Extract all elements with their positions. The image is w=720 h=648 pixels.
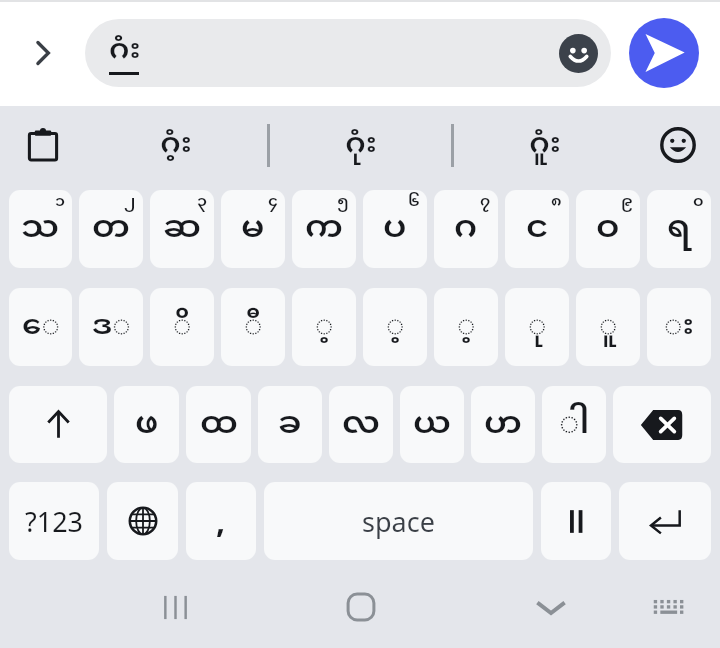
button[interactable]: Shift	[9, 386, 107, 463]
button[interactable]: ◌့	[363, 288, 427, 366]
staticText: ◌့	[386, 306, 405, 348]
button[interactable]: Clipboard	[0, 106, 85, 184]
button[interactable]: ဂံ့း	[85, 106, 267, 184]
button[interactable]: ဖ	[114, 386, 179, 463]
button[interactable]: Enter	[619, 482, 711, 560]
staticText: ၂	[124, 191, 136, 213]
button[interactable]: Switch keyboard	[634, 573, 702, 641]
staticText: ဒ◌	[92, 306, 131, 348]
staticText: လ	[342, 402, 380, 448]
staticText: space	[362, 503, 435, 540]
staticText: ဂံ့း	[160, 125, 192, 166]
button[interactable]: ◌း	[647, 288, 711, 366]
staticText: ◌း	[664, 306, 694, 348]
button[interactable]: Change language	[107, 482, 178, 560]
staticText: တ	[92, 206, 130, 252]
button[interactable]: ဝ	[576, 190, 640, 268]
staticText: ဂူံး	[529, 125, 561, 166]
button[interactable]: ,	[186, 482, 256, 560]
button[interactable]: ဂုံး	[270, 106, 451, 184]
button[interactable]: ◌ီ	[221, 288, 285, 366]
button[interactable]: ခ	[258, 386, 322, 463]
staticText: ဂုံး	[345, 125, 377, 166]
button[interactable]: ဂံး	[85, 19, 611, 87]
staticText: ဟ	[484, 402, 522, 448]
staticText: ၆	[408, 191, 420, 213]
button[interactable]: Emoji	[559, 34, 598, 73]
staticText: ဂ	[454, 206, 478, 252]
button[interactable]: Home	[327, 573, 395, 641]
staticText: ၄	[268, 191, 278, 213]
button[interactable]: ဒ◌	[79, 288, 143, 366]
staticText: ေ	[22, 306, 60, 348]
button[interactable]: ◌ု	[505, 288, 569, 366]
button[interactable]: ယ	[400, 386, 464, 463]
button[interactable]: ဂူံး	[454, 106, 635, 184]
staticText: ◌ူ	[599, 306, 618, 348]
staticText: ၁	[55, 191, 65, 213]
button[interactable]: ဂ	[434, 190, 498, 268]
button[interactable]: ထ	[186, 386, 251, 463]
staticText: ပ	[383, 206, 407, 252]
staticText: ယ	[413, 402, 451, 448]
button[interactable]: ေ	[9, 288, 72, 366]
staticText: ၃	[197, 191, 207, 213]
staticText: က	[305, 206, 343, 252]
button[interactable]: Backspace	[613, 386, 711, 463]
button[interactable]: ◌ိ	[150, 288, 214, 366]
staticText: ဆ	[163, 206, 202, 252]
staticText: ခ	[278, 402, 302, 448]
button[interactable]: ဆ	[150, 190, 214, 268]
button[interactable]: space	[264, 482, 533, 560]
staticText: ◌ိ	[173, 306, 192, 348]
button[interactable]: Hide keyboard	[517, 573, 585, 641]
button[interactable]: မ	[221, 190, 285, 268]
staticText: ၈	[551, 191, 562, 213]
staticText: ,	[216, 499, 226, 543]
staticText: မ	[241, 206, 265, 252]
button[interactable]: ◌့	[434, 288, 498, 366]
button[interactable]: ဟ	[471, 386, 535, 463]
staticText: သ	[21, 206, 60, 252]
staticText: ါ	[559, 402, 590, 448]
button[interactable]: Emoji keyboard	[635, 106, 720, 184]
button[interactable]: Recents	[141, 573, 209, 641]
button[interactable]: Pause	[541, 482, 611, 560]
staticText: ◌့	[457, 306, 476, 348]
staticText: ◌့	[315, 306, 334, 348]
staticText: ?123	[25, 503, 84, 540]
button[interactable]: ?123	[9, 482, 99, 560]
staticText: င	[526, 206, 549, 252]
staticText: ထ	[200, 402, 238, 448]
staticText: ဖ	[135, 402, 159, 448]
button[interactable]: သ	[9, 190, 72, 268]
button[interactable]: ါ	[542, 386, 606, 463]
button[interactable]: ◌့	[292, 288, 356, 366]
staticText: ဂံး	[109, 31, 141, 72]
button[interactable]: ရ	[647, 190, 711, 268]
button[interactable]: ပ	[363, 190, 427, 268]
staticText: ရ	[667, 206, 691, 252]
staticText: ◌ု	[528, 306, 547, 348]
button[interactable]: လ	[329, 386, 393, 463]
button[interactable]: က	[292, 190, 356, 268]
staticText: ဝ	[596, 206, 620, 252]
staticText: ၉	[621, 191, 633, 213]
button[interactable]: တ	[79, 190, 143, 268]
staticText: ၅	[337, 191, 349, 213]
staticText: ၀	[693, 191, 704, 213]
button[interactable]: Send	[629, 18, 699, 88]
staticText: ၇	[480, 191, 491, 213]
button[interactable]: င	[505, 190, 569, 268]
button[interactable]: Expand toolbar	[0, 0, 85, 106]
button[interactable]: ◌ူ	[576, 288, 640, 366]
staticText: ◌ီ	[244, 306, 263, 348]
